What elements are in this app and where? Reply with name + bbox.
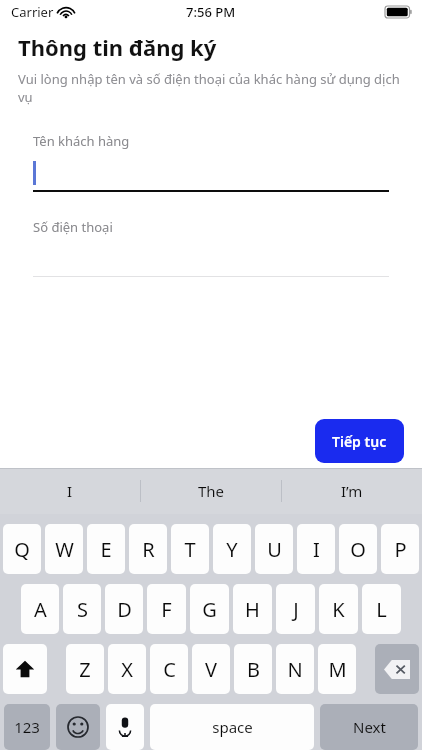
staticText: W [55, 536, 74, 563]
staticText: R [142, 536, 155, 563]
button[interactable]: I [0, 468, 140, 514]
button[interactable]: U [255, 524, 293, 574]
staticText: D [117, 596, 132, 623]
staticText: M [328, 656, 347, 683]
staticText: Số điện thoại [33, 218, 113, 236]
button[interactable]: O [339, 524, 377, 574]
staticText: H [245, 596, 260, 623]
button[interactable]: G [190, 584, 229, 634]
button[interactable]: E [87, 524, 125, 574]
staticText: S [77, 596, 88, 623]
button[interactable]: Emoji [56, 704, 100, 750]
button[interactable]: P [381, 524, 419, 574]
button[interactable]: R [129, 524, 167, 574]
button[interactable]: B [234, 644, 272, 694]
staticText: V [205, 656, 217, 683]
button[interactable]: Z [66, 644, 104, 694]
button[interactable]: A [21, 584, 59, 634]
button[interactable]: I [297, 524, 335, 574]
staticText: U [267, 536, 282, 563]
staticText: Tiếp tục [332, 432, 387, 451]
button[interactable]: X [108, 644, 146, 694]
button[interactable]: Backspace [375, 644, 419, 694]
staticText: C [163, 656, 176, 683]
button[interactable]: Tên khách hàng [33, 132, 389, 192]
staticText: F [161, 596, 172, 623]
button[interactable]: I’m [282, 468, 422, 514]
staticText: A [34, 596, 47, 623]
button[interactable]: Next [320, 704, 418, 750]
button[interactable]: 123 [4, 704, 50, 750]
staticText: I [67, 481, 73, 501]
staticText: N [287, 656, 303, 683]
staticText: T [184, 536, 196, 563]
staticText: Next [353, 717, 386, 737]
button[interactable]: V [192, 644, 230, 694]
button[interactable]: C [150, 644, 188, 694]
staticText: Y [226, 536, 238, 563]
staticText: 123 [14, 717, 40, 737]
button[interactable]: space [150, 704, 314, 750]
staticText: E [100, 536, 112, 563]
button[interactable]: Số điện thoại [33, 218, 389, 277]
staticText: O [350, 536, 366, 563]
staticText: Carrier [11, 3, 54, 21]
button[interactable]: F [147, 584, 186, 634]
staticText: Thông tin đăng ký [18, 32, 217, 62]
staticText: I’m [341, 481, 363, 501]
button[interactable]: Q [3, 524, 41, 574]
button[interactable]: Tiếp tục [315, 419, 404, 463]
staticText: 7:56 PM [186, 3, 236, 21]
button[interactable]: J [276, 584, 315, 634]
button[interactable]: L [362, 584, 401, 634]
staticText: G [202, 596, 217, 623]
staticText: K [332, 596, 345, 623]
button[interactable]: T [171, 524, 209, 574]
staticText: Q [14, 536, 30, 563]
button[interactable]: M [318, 644, 356, 694]
staticText: The [198, 481, 225, 501]
button[interactable]: K [319, 584, 358, 634]
staticText: I [313, 536, 320, 563]
button[interactable]: H [233, 584, 272, 634]
button[interactable]: D [105, 584, 143, 634]
button[interactable]: S [63, 584, 101, 634]
staticText: Tên khách hàng [33, 132, 130, 150]
staticText: space [212, 717, 253, 737]
staticText: Z [79, 656, 91, 683]
staticText: L [376, 596, 387, 623]
staticText: J [293, 596, 299, 623]
staticText: P [394, 536, 407, 563]
button[interactable]: Shift [3, 644, 47, 694]
button[interactable]: W [45, 524, 83, 574]
staticText: Vui lòng nhập tên và số điện thoại của k… [18, 70, 404, 106]
staticText: B [247, 656, 260, 683]
button[interactable]: Y [213, 524, 251, 574]
staticText: X [121, 656, 133, 683]
button[interactable]: Dictation [106, 704, 144, 750]
button[interactable]: The [141, 468, 281, 514]
button[interactable]: N [276, 644, 314, 694]
